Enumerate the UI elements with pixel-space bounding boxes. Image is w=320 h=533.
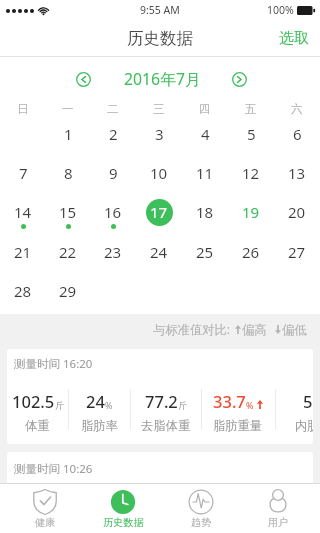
button[interactable]: 健康 [6, 484, 84, 533]
staticText: 12 [242, 163, 260, 183]
staticText: 29 [59, 281, 77, 301]
staticText: 23 [104, 242, 122, 262]
staticText: 选取 [279, 29, 309, 48]
staticText: % [105, 399, 113, 411]
staticText: 历史数据 [127, 28, 193, 49]
button[interactable]: 27 [280, 232, 314, 271]
staticText: 26 [242, 242, 260, 262]
staticText: 18 [196, 202, 214, 222]
button[interactable]: 选取 [268, 20, 320, 57]
button[interactable]: 2 [96, 114, 130, 153]
button[interactable]: 12 [234, 153, 268, 192]
button[interactable]: 21 [6, 232, 40, 271]
staticText: 5 [303, 390, 313, 412]
staticText: 15 [59, 202, 77, 222]
staticText: 5 [247, 124, 256, 144]
button[interactable]: 14 [6, 192, 40, 231]
staticText: 二 [107, 102, 119, 116]
staticText: 四 [199, 102, 211, 116]
button[interactable]: 20 [280, 192, 314, 231]
staticText: 13 [288, 163, 306, 183]
staticText: 19 [242, 202, 260, 222]
staticText: 9 [109, 163, 118, 183]
button[interactable]: 24 [142, 232, 176, 271]
staticText: 趋势 [191, 516, 212, 529]
staticText: 1 [64, 124, 73, 144]
staticText: 6 [293, 124, 302, 144]
staticText: 六 [291, 102, 303, 116]
staticText: 11 [196, 163, 214, 183]
button[interactable]: 28 [6, 271, 40, 310]
button[interactable]: 26 [234, 232, 268, 271]
staticText: 测量时间 10:26 [14, 461, 93, 477]
staticText: 28 [14, 281, 32, 301]
staticText: 脂肪重量 [213, 418, 263, 433]
staticText: 与标准值对比: [153, 321, 231, 338]
staticText: 斤 [55, 400, 64, 411]
staticText: 9:55 AM [140, 3, 180, 17]
button[interactable]: Previous month [70, 66, 96, 92]
button[interactable]: 25 [188, 232, 222, 271]
button[interactable]: 13 [280, 153, 314, 192]
button[interactable]: 测量时间 10:26 [7, 452, 313, 512]
button[interactable]: 5 [234, 114, 268, 153]
staticText: 20 [288, 202, 306, 222]
staticText: 用户 [268, 516, 289, 529]
button[interactable]: 8 [51, 153, 85, 192]
staticText: 77.2 [145, 390, 178, 412]
button[interactable]: 测量时间 16:20 [7, 349, 313, 444]
staticText: 100% [267, 3, 294, 17]
staticText: 16 [104, 202, 122, 222]
button[interactable]: 6 [280, 114, 314, 153]
button[interactable]: 18 [188, 192, 222, 231]
button[interactable]: 3 [142, 114, 176, 153]
button[interactable]: Next month [226, 66, 252, 92]
staticText: 脂肪率 [81, 418, 118, 433]
staticText: 内脏 [295, 418, 313, 433]
button[interactable]: 4 [188, 114, 222, 153]
button[interactable]: 7 [6, 153, 40, 192]
staticText: 17 [150, 202, 168, 222]
staticText: 体重 [25, 418, 50, 433]
staticText: 7 [19, 163, 28, 183]
staticText: 14 [14, 202, 32, 222]
staticText: 2016年7月 [124, 68, 201, 90]
staticText: 三 [153, 102, 165, 116]
staticText: 22 [59, 242, 77, 262]
staticText: 斤 [178, 400, 187, 411]
button[interactable]: 历史数据 [84, 484, 162, 533]
staticText: 27 [288, 242, 306, 262]
button[interactable]: 16 [96, 192, 130, 231]
button[interactable]: 15 [51, 192, 85, 231]
button[interactable]: 趋势 [162, 484, 240, 533]
staticText: 25 [196, 242, 214, 262]
staticText: 日 [17, 102, 29, 116]
staticText: 健康 [35, 516, 56, 529]
button[interactable]: 19 [234, 192, 268, 231]
staticText: 33.7 [213, 390, 246, 412]
staticText: 4 [201, 124, 210, 144]
button[interactable]: 29 [51, 271, 85, 310]
staticText: 2 [109, 124, 118, 144]
staticText: 去脂体重 [141, 418, 191, 433]
staticText: 102.5 [12, 390, 55, 412]
staticText: 21 [14, 242, 32, 262]
button[interactable]: 9 [96, 153, 130, 192]
staticText: 历史数据 [103, 516, 144, 529]
button[interactable]: 17 [142, 192, 176, 231]
staticText: 偏高 [242, 322, 267, 337]
button[interactable]: 10 [142, 153, 176, 192]
staticText: 测量时间 16:20 [14, 356, 93, 372]
button[interactable]: 22 [51, 232, 85, 271]
staticText: % [246, 399, 254, 411]
staticText: 24 [150, 242, 168, 262]
button[interactable]: 用户 [239, 484, 317, 533]
staticText: 偏低 [282, 322, 307, 337]
staticText: 8 [64, 163, 73, 183]
button[interactable]: 23 [96, 232, 130, 271]
staticText: 10 [150, 163, 168, 183]
staticText: 3 [155, 124, 164, 144]
button[interactable]: 1 [51, 114, 85, 153]
button[interactable]: 11 [188, 153, 222, 192]
staticText: 一 [62, 102, 74, 116]
